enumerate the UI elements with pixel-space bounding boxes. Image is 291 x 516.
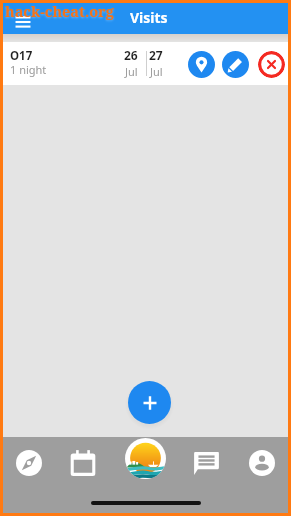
staticText: 27 [149,47,163,63]
button[interactable]: Menu [12,11,34,33]
staticText: hack-cheat.org [5,1,114,21]
staticText: Jul [125,64,138,79]
button[interactable]: Home [125,438,166,479]
button[interactable]: Add [128,381,171,424]
button[interactable]: Location [188,51,215,78]
staticText: Visits [130,8,168,27]
staticText: 26 [124,47,138,63]
button[interactable]: Explore [16,450,42,476]
button[interactable]: Calendar [69,449,97,477]
button[interactable]: O17 [3,42,288,85]
staticText: O17 [10,48,33,64]
button[interactable]: Cancel [258,51,285,78]
button[interactable]: Messages [191,447,222,478]
staticText: Jul [150,64,163,79]
button[interactable]: Profile [249,450,275,476]
button[interactable]: Edit [222,51,249,78]
staticText: 1 night [10,62,47,77]
